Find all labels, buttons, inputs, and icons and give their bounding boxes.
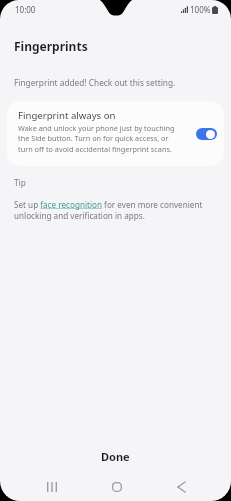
staticText: Done <box>101 449 130 464</box>
staticText: 10:00 <box>15 4 36 15</box>
button[interactable]: Done <box>0 437 231 470</box>
staticText: Tip <box>14 177 26 188</box>
button[interactable]: Fingerprint always on toggle <box>196 128 217 140</box>
button[interactable]: Back <box>164 471 198 501</box>
staticText: Set up face recognition for even more co… <box>14 199 215 221</box>
staticText: Fingerprint added! Check out this settin… <box>14 77 176 88</box>
button[interactable]: Fingerprint always on <box>7 101 224 166</box>
staticText: Fingerprint always on <box>18 109 116 122</box>
staticText: 100% <box>190 4 211 15</box>
button[interactable]: Home <box>100 471 134 501</box>
button[interactable]: Recents <box>35 471 69 501</box>
staticText: Wake and unlock your phone just by touch… <box>18 123 182 154</box>
staticText: Fingerprints <box>14 38 88 54</box>
